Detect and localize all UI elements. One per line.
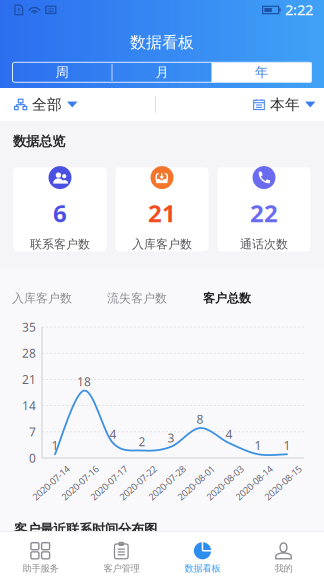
button[interactable]: 助手服务 [0,531,81,576]
staticText: 2020-07-16 [47,463,93,475]
staticText: 数据看板 [130,33,194,52]
staticText: 客户最近联系时间分布图 [14,521,157,537]
staticText: 全部 [32,95,62,113]
staticText: 4 [225,426,232,442]
staticText: 联系客户数 [30,237,90,252]
staticText: 我的 [274,563,292,574]
staticText: 年 [255,64,268,80]
button[interactable]: 21 [115,167,208,251]
staticText: 18 [77,374,91,390]
staticText: 数据总览 [13,133,65,149]
button[interactable]: 数据看板 [162,531,243,576]
staticText: 数据看板 [184,563,220,574]
staticText: 21 [22,371,36,387]
button[interactable]: 年 [211,62,311,82]
staticText: 1 [283,437,290,453]
staticText: 28 [22,345,36,361]
staticText: 2020-07-28 [134,463,180,475]
button[interactable]: 我的 [243,531,324,576]
staticText: 客户总数 [203,291,251,306]
staticText: 14 [22,398,36,413]
staticText: 流失客户数 [107,291,167,306]
staticText: 2 [138,433,145,449]
staticText: 客户管理 [103,563,139,574]
button[interactable]: 客户管理 [81,531,162,576]
staticText: 2020-07-22 [105,463,151,475]
staticText: 月 [155,64,168,80]
staticText: 2020-08-14 [221,463,267,475]
staticText: 通话次数 [240,237,288,252]
staticText: 助手服务 [22,563,58,574]
button[interactable]: 客户总数 [203,291,251,306]
staticText: 入库客户数 [132,237,192,252]
staticText: 2020-08-15 [250,463,296,475]
staticText: 本年 [270,95,300,113]
staticText: 入库客户数 [12,291,72,306]
staticText: 1 [254,437,261,453]
staticText: 3 [167,430,174,446]
staticText: 2020-07-14 [18,463,64,475]
button[interactable]: 全部 [0,88,155,121]
staticText: 6 [53,197,67,229]
staticText: 4 [109,426,116,442]
staticText: 1 [51,437,58,453]
staticText: 22 [250,197,278,229]
staticText: 周 [55,64,68,80]
staticText: 2020-08-03 [192,463,238,475]
staticText: 8 [196,411,203,427]
staticText: 2:22 [285,0,313,19]
button[interactable]: 22 [217,167,310,251]
staticText: 7 [29,424,36,440]
staticText: 35 [22,319,36,335]
button[interactable]: 月 [112,62,211,82]
button[interactable]: 6 [13,167,106,251]
staticText: 21 [148,197,176,229]
button[interactable]: 流失客户数 [107,291,167,306]
staticText: 0 [29,450,36,466]
button[interactable]: 本年 [156,88,324,121]
button[interactable]: 入库客户数 [12,291,72,306]
button[interactable]: 周 [12,62,111,82]
staticText: 2020-08-01 [163,463,209,475]
staticText: 2020-07-17 [76,463,122,475]
